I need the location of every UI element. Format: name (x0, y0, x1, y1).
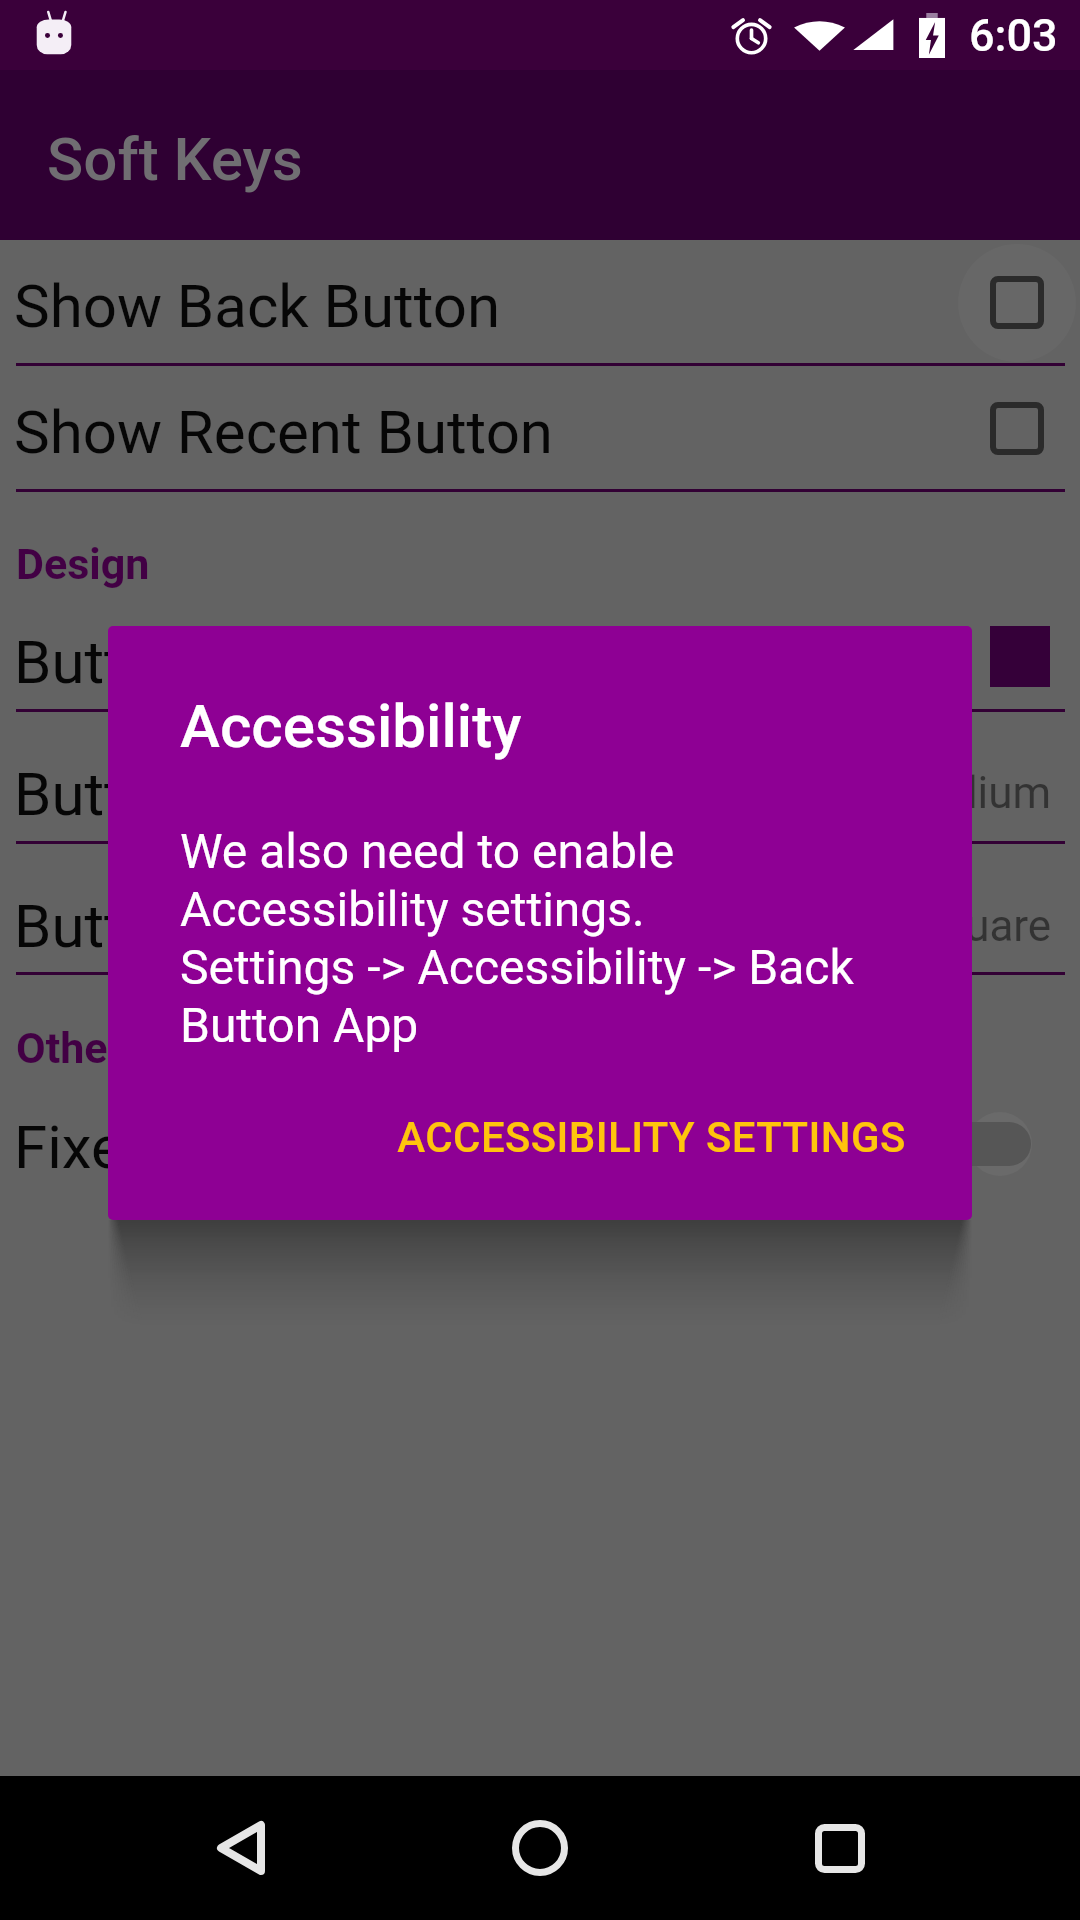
staticText: Accessibility (180, 691, 522, 761)
staticText: Show Back Button (14, 271, 501, 341)
staticText: Show Recent Button (14, 397, 554, 467)
button[interactable]: Button Size (0, 712, 1080, 841)
button[interactable]: Button Color (0, 492, 1080, 709)
button[interactable]: Home (468, 1776, 612, 1920)
staticText: Soft Keys (47, 124, 303, 194)
other: Checkbox (990, 402, 1044, 455)
staticText: Medium (891, 767, 1052, 819)
button[interactable]: Show Back Button (0, 240, 1080, 363)
staticText: Square (914, 900, 1052, 952)
button[interactable]: Back (168, 1776, 312, 1920)
staticText: Fixed Position (14, 1112, 391, 1182)
staticText: Button Size (14, 759, 317, 829)
staticText: Other (16, 1023, 124, 1073)
button[interactable]: Button Shape (0, 844, 1080, 972)
button[interactable]: Show Recent Button (0, 366, 1080, 489)
button[interactable]: ACCESSIBILITY SETTINGS (378, 1088, 924, 1186)
staticText: Button Color (14, 627, 348, 697)
staticText: ACCESSIBILITY SETTINGS (397, 1113, 906, 1162)
staticText: We also need to enable Accessibility set… (180, 823, 854, 1053)
staticText: Design (16, 539, 150, 589)
staticText: Button Shape (14, 891, 373, 961)
staticText: 6:03 (969, 9, 1058, 62)
other: Fixed position toggle (940, 1114, 1050, 1174)
button[interactable]: Recent apps (768, 1776, 912, 1920)
other: Checkbox (990, 276, 1044, 329)
button[interactable]: Fixed Position (0, 975, 1080, 1195)
